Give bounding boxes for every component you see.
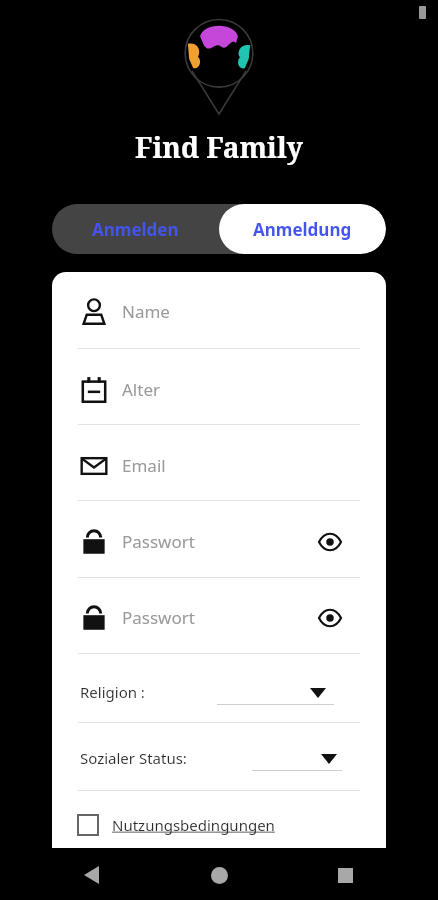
button[interactable]: Email: [52, 438, 386, 494]
button[interactable]: Recents: [334, 864, 356, 886]
button[interactable]: Religion :: [52, 674, 386, 720]
button[interactable]: Sozialer Status:: [52, 740, 386, 786]
staticText: Passwort: [122, 606, 195, 629]
button[interactable]: Anmelden: [52, 204, 219, 254]
button[interactable]: Passwort anzeigen: [314, 526, 346, 558]
staticText: Nutzungsbedingungen: [112, 815, 275, 835]
button[interactable]: Passwort anzeigen: [314, 602, 346, 634]
button[interactable]: Name: [52, 284, 386, 340]
staticText: Passwort: [122, 530, 195, 553]
button[interactable]: Anmeldung: [219, 204, 386, 254]
button[interactable]: Back: [80, 864, 102, 886]
staticText: Religion :: [80, 682, 145, 702]
button[interactable]: Nutzungsbedingungen: [78, 808, 275, 842]
staticText: Name: [122, 300, 170, 323]
button[interactable]: Passwort: [52, 514, 386, 570]
staticText: Email: [122, 454, 166, 477]
staticText: Alter: [122, 378, 160, 401]
staticText: Anmeldung: [253, 218, 352, 241]
button[interactable]: Alter: [52, 362, 386, 418]
staticText: Sozialer Status:: [80, 748, 187, 768]
staticText: Anmelden: [92, 218, 179, 241]
button[interactable]: Passwort: [52, 590, 386, 646]
button[interactable]: Home: [208, 864, 230, 886]
staticText: Find Family: [135, 128, 303, 166]
